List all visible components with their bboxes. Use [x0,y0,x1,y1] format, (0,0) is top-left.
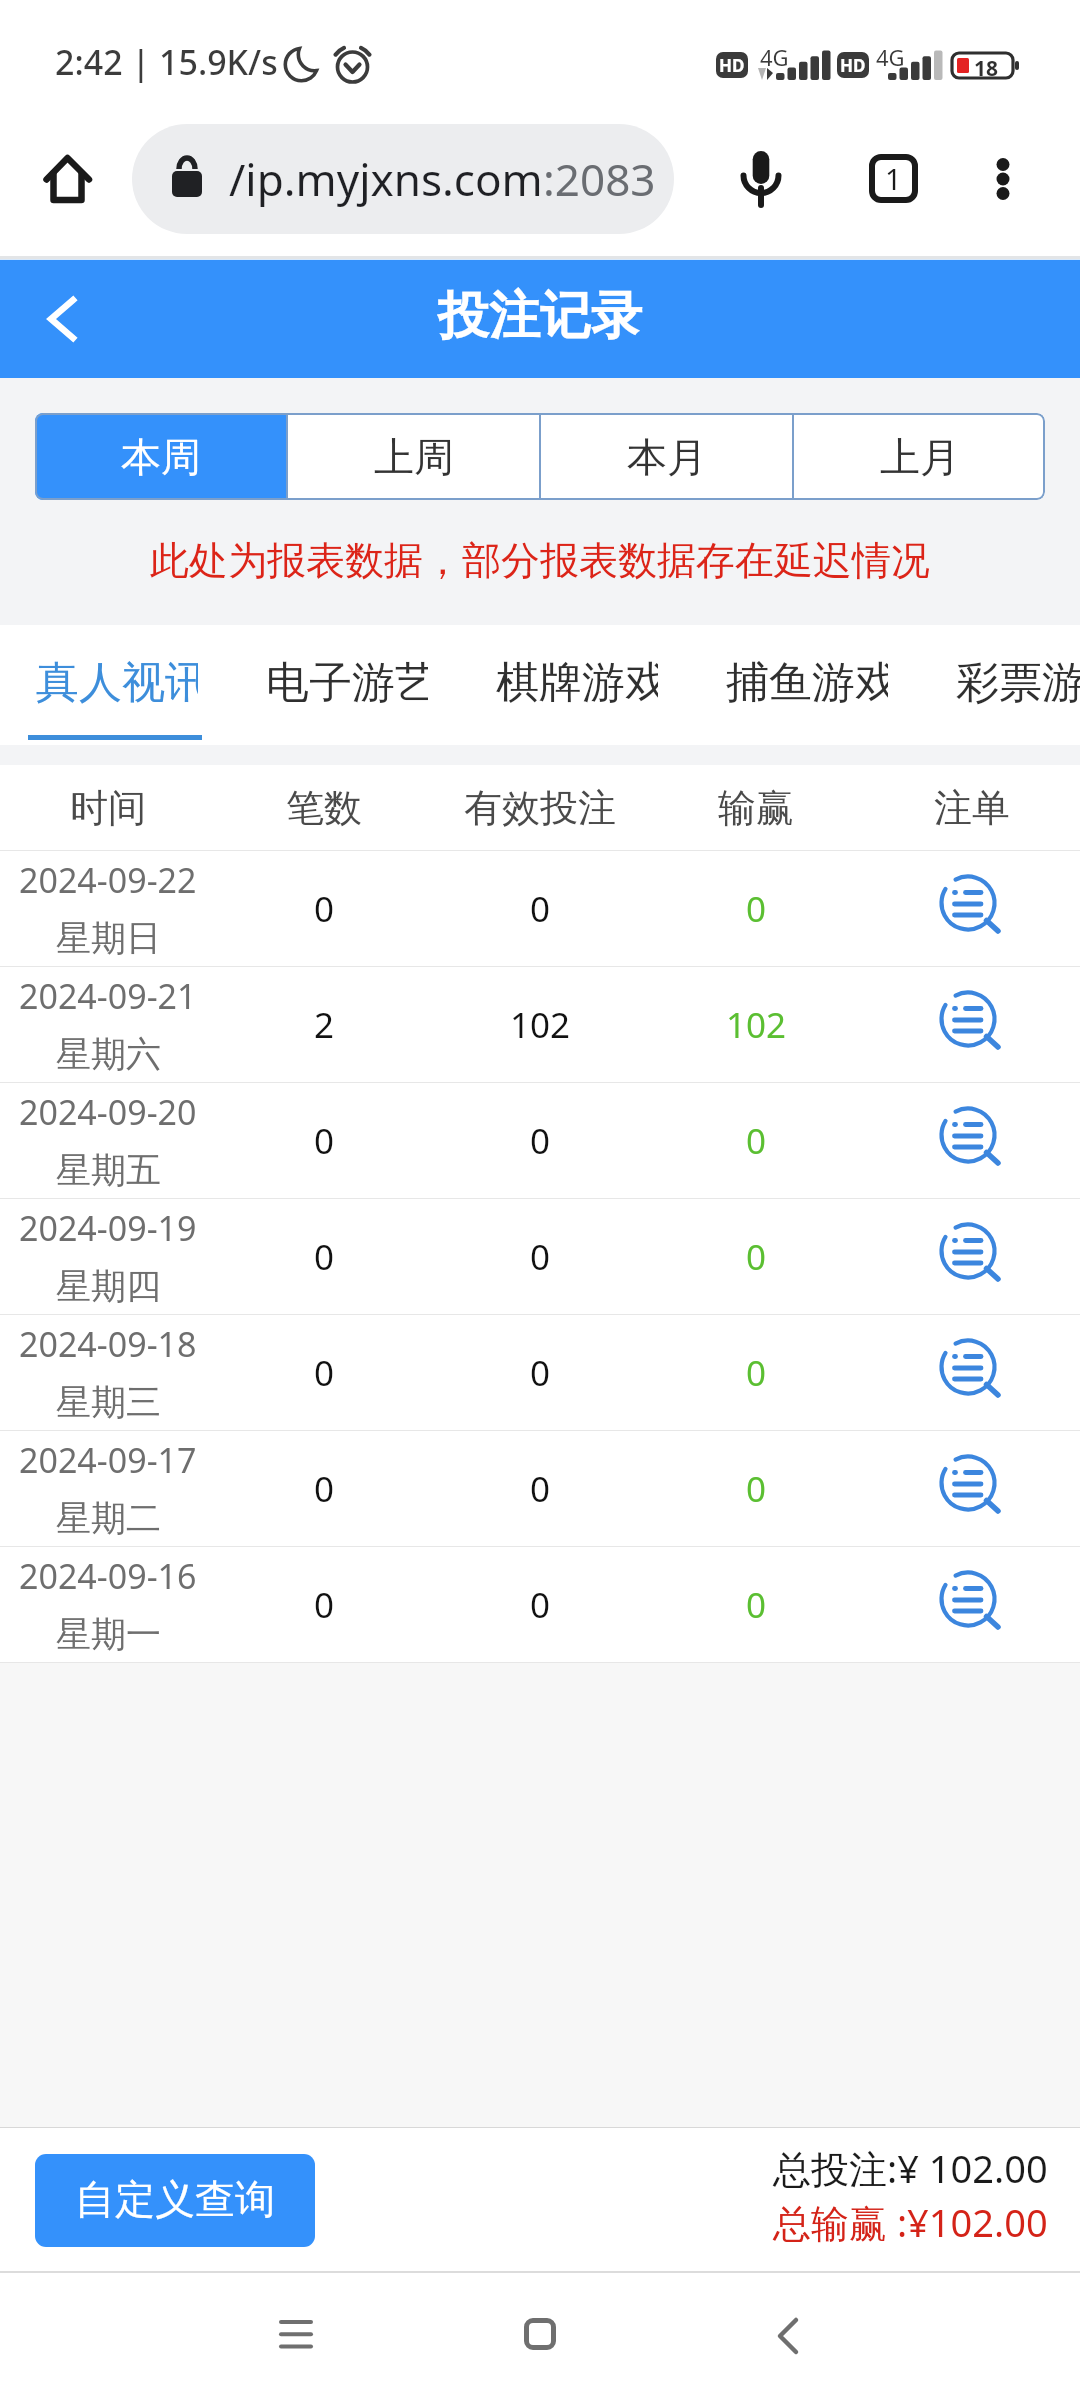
button[interactable]: 自定义查询 [35,2154,315,2247]
button[interactable]: Home [30,141,106,217]
staticText: 0 [530,1233,551,1281]
staticText: 2:42 | 15.9K/s [55,39,278,85]
staticText: 0 [314,1117,335,1165]
button[interactable]: 上周 [288,413,539,500]
staticText: 星期四 [56,1264,161,1308]
staticText: 此处为报表数据，部分报表数据存在延迟情况 [0,536,1080,585]
button[interactable]: More options [975,151,1031,207]
staticText: 4G [760,42,789,72]
staticText: 有效投注 [464,784,616,832]
staticText: 0 [746,1465,767,1513]
staticText: 本周 [121,432,201,482]
staticText: 0 [314,1233,335,1281]
staticText: 捕鱼游戏 [726,656,888,710]
staticText: 0 [314,1581,335,1629]
button[interactable]: View bet details [925,1556,1015,1646]
staticText: 0 [746,1349,767,1397]
staticText: 0 [530,1465,551,1513]
staticText: 注单 [934,784,1010,832]
staticText: 星期三 [56,1380,161,1424]
button[interactable]: 上月 [794,413,1045,500]
staticText: 电子游艺 [266,656,428,710]
button[interactable]: Recent apps [251,2289,341,2379]
button[interactable]: View bet details [925,976,1015,1066]
staticText: 输赢 [718,784,794,832]
button[interactable]: Home [495,2289,585,2379]
staticText: 棋牌游戏 [496,656,658,710]
staticText: 2024-09-21 [19,973,197,1019]
staticText: 时间 [70,784,146,832]
staticText: 星期日 [56,916,161,960]
button[interactable]: 2024-09-16 [0,1547,1080,1662]
staticText: 0 [746,1581,767,1629]
button[interactable]: Voice search [728,146,794,212]
staticText: 2024-09-22 [19,857,197,903]
button[interactable]: View bet details [925,1208,1015,1298]
staticText: 彩票游戏 [956,656,1080,710]
button[interactable]: 2024-09-21 [0,967,1080,1082]
staticText: 2024-09-17 [19,1437,197,1483]
staticText: 4G [876,42,905,72]
staticText: 星期一 [56,1612,161,1656]
staticText: HD [840,54,866,77]
button[interactable]: 棋牌游戏 [496,625,658,745]
staticText: 0 [530,885,551,933]
staticText: /ip.myjxns.com [229,149,543,209]
staticText: 0 [746,1233,767,1281]
staticText: 星期二 [56,1496,161,1540]
button[interactable]: Back [743,2291,833,2381]
button[interactable]: 电子游艺 [266,625,428,745]
staticText: 本月 [627,432,707,482]
button[interactable]: 本周 [35,413,286,500]
staticText: 0 [314,1465,335,1513]
button[interactable]: View bet details [925,1324,1015,1414]
staticText: 0 [746,1117,767,1165]
staticText: 星期六 [56,1032,161,1076]
staticText: 0 [746,885,767,933]
staticText: HD [719,54,745,77]
button[interactable]: 2024-09-19 [0,1199,1080,1314]
staticText: 102 [510,1001,571,1049]
staticText: 102 [726,1001,787,1049]
staticText: 0 [530,1581,551,1629]
staticText: 2024-09-18 [19,1321,197,1367]
staticText: 0 [314,1349,335,1397]
staticText: 0 [530,1349,551,1397]
button[interactable]: /ip.myjxns.com [132,124,674,234]
button[interactable]: 真人视讯 [36,625,198,745]
staticText: 总投注:¥ 102.00 [773,2142,1048,2194]
staticText: 上月 [880,432,960,482]
staticText: 2024-09-20 [19,1089,197,1135]
staticText: 投注记录 [438,284,642,348]
button[interactable]: 2024-09-17 [0,1431,1080,1546]
staticText: 2 [314,1001,335,1049]
staticText: 18 [974,54,999,81]
button[interactable]: View bet details [925,860,1015,950]
button[interactable]: 捕鱼游戏 [726,625,888,745]
staticText: 0 [314,885,335,933]
button[interactable]: 本月 [541,413,792,500]
button[interactable]: Back [22,279,102,359]
button[interactable]: 2024-09-18 [0,1315,1080,1430]
button[interactable]: 2024-09-22 [0,851,1080,966]
button[interactable]: View bet details [925,1440,1015,1530]
staticText: 星期五 [56,1148,161,1192]
staticText: 笔数 [286,784,362,832]
staticText: 2024-09-19 [19,1205,197,1251]
staticText: 自定义查询 [75,2174,275,2224]
staticText: 0 [530,1117,551,1165]
button[interactable]: Tabs [860,145,926,211]
staticText: 2024-09-16 [19,1553,197,1599]
staticText: 真人视讯 [36,656,198,710]
staticText: 总输赢 :¥102.00 [773,2196,1048,2248]
staticText: 1 [885,159,902,198]
staticText: :2083 [543,149,656,209]
button[interactable]: 2024-09-20 [0,1083,1080,1198]
staticText: 上周 [374,432,454,482]
button[interactable]: View bet details [925,1092,1015,1182]
button[interactable]: 彩票游戏 [956,625,1080,745]
